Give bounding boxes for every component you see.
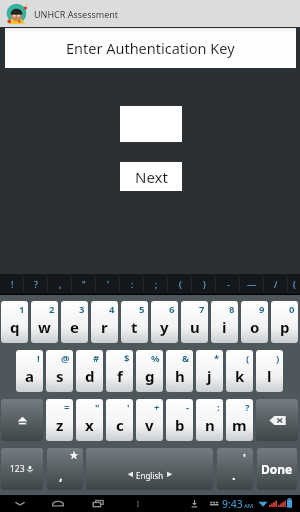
button[interactable]: , [48, 274, 72, 294]
staticText: 123 [10, 463, 25, 475]
button[interactable]: * [196, 350, 223, 392]
button[interactable]: 8 [211, 301, 238, 343]
staticText: & [182, 352, 190, 365]
button[interactable]: ! [16, 350, 43, 392]
button[interactable]: " [76, 399, 103, 441]
staticText: j [207, 366, 212, 386]
staticText: 1 [19, 303, 25, 316]
button[interactable]: ( [288, 274, 300, 294]
staticText: 9:43 [222, 497, 243, 511]
button[interactable]: Enter Authentication Key [5, 28, 296, 68]
staticText: v [145, 415, 154, 435]
staticText: h [175, 366, 185, 386]
button[interactable]: # [76, 350, 103, 392]
button[interactable]: 5 [121, 301, 148, 343]
button[interactable]: ? [24, 274, 48, 294]
staticText: + [154, 401, 160, 414]
button[interactable]: ) [192, 274, 216, 294]
button[interactable]: " [72, 274, 96, 294]
staticText: m [232, 415, 247, 435]
staticText: k [235, 366, 245, 386]
button[interactable]: Recent apps [90, 496, 106, 512]
button[interactable]: - [216, 274, 240, 294]
button[interactable]: = [46, 399, 73, 441]
button[interactable]: @ [46, 350, 73, 392]
staticText: f [117, 366, 123, 386]
button[interactable]: 4 [91, 301, 118, 343]
button[interactable]: Menu [130, 496, 146, 512]
staticText: 0 [289, 303, 295, 316]
button[interactable]: / [264, 274, 288, 294]
staticText: t [131, 317, 138, 337]
button[interactable]: 6 [151, 301, 178, 343]
button[interactable]: 7 [181, 301, 208, 343]
staticText: Done [261, 461, 293, 477]
button[interactable]: ' [96, 274, 120, 294]
staticText: g [145, 366, 155, 386]
staticText: x [85, 415, 94, 435]
button[interactable]: Backspace [256, 399, 298, 441]
staticText: 3 [79, 303, 85, 316]
button[interactable]: ( [168, 274, 192, 294]
staticText: / [274, 278, 278, 290]
staticText: ; [155, 278, 158, 290]
button[interactable]: $ [106, 350, 133, 392]
staticText: l [267, 366, 272, 386]
button[interactable]: - [166, 399, 193, 441]
staticText: ◀ [128, 470, 133, 478]
button[interactable]: % [136, 350, 163, 392]
staticText: o [250, 317, 260, 337]
staticText: ( [179, 278, 182, 290]
button[interactable]: ? [226, 399, 253, 441]
staticText: u [190, 317, 200, 337]
staticText: , [59, 466, 63, 484]
staticText: AM [244, 502, 254, 510]
button[interactable]: + [136, 399, 163, 441]
staticText: w [38, 317, 51, 337]
staticText: b [175, 415, 185, 435]
button[interactable]: : [120, 274, 144, 294]
button[interactable]: 2 [31, 301, 58, 343]
button[interactable]: 1 [1, 301, 28, 343]
button[interactable]: Hide keyboard [12, 496, 28, 512]
button[interactable]: Symbols and voice input [1, 448, 43, 490]
staticText: ) [203, 278, 206, 290]
staticText: 7 [199, 303, 205, 316]
button[interactable]: Done [257, 448, 297, 490]
button[interactable]: ) [256, 350, 283, 392]
staticText: - [186, 401, 190, 414]
button[interactable]: Shift [1, 399, 43, 441]
button[interactable]: ( [226, 350, 253, 392]
button[interactable]: & [166, 350, 193, 392]
button[interactable]: ; [144, 274, 168, 294]
button[interactable]: Next [120, 162, 182, 191]
staticText: $ [124, 352, 130, 365]
staticText: ( [246, 352, 250, 365]
button[interactable]: Emoji and comma [47, 448, 83, 490]
staticText: # [93, 352, 100, 365]
button[interactable]: — [240, 274, 264, 294]
staticText: 4 [109, 303, 115, 316]
staticText: ? [34, 278, 38, 290]
staticText: 9 [259, 303, 265, 316]
staticText: ★ [69, 449, 79, 462]
button[interactable]: 0 [271, 301, 298, 343]
staticText: - [227, 278, 230, 290]
button[interactable]: ' [106, 399, 133, 441]
staticText: y [160, 317, 169, 337]
staticText: ) [276, 352, 280, 365]
button[interactable]: 9 [241, 301, 268, 343]
button[interactable]: : [196, 399, 223, 441]
staticText: e [70, 317, 79, 337]
button[interactable]: Period [217, 448, 253, 490]
button[interactable]: 3 [61, 301, 88, 343]
staticText: 6 [169, 303, 175, 316]
staticText: % [151, 352, 160, 365]
button[interactable]: ! [0, 274, 24, 294]
staticText: = [64, 401, 70, 414]
button[interactable]: Space [86, 448, 213, 490]
button[interactable]: Home [50, 496, 66, 512]
staticText: ' [127, 401, 130, 414]
staticText: a [25, 366, 34, 386]
